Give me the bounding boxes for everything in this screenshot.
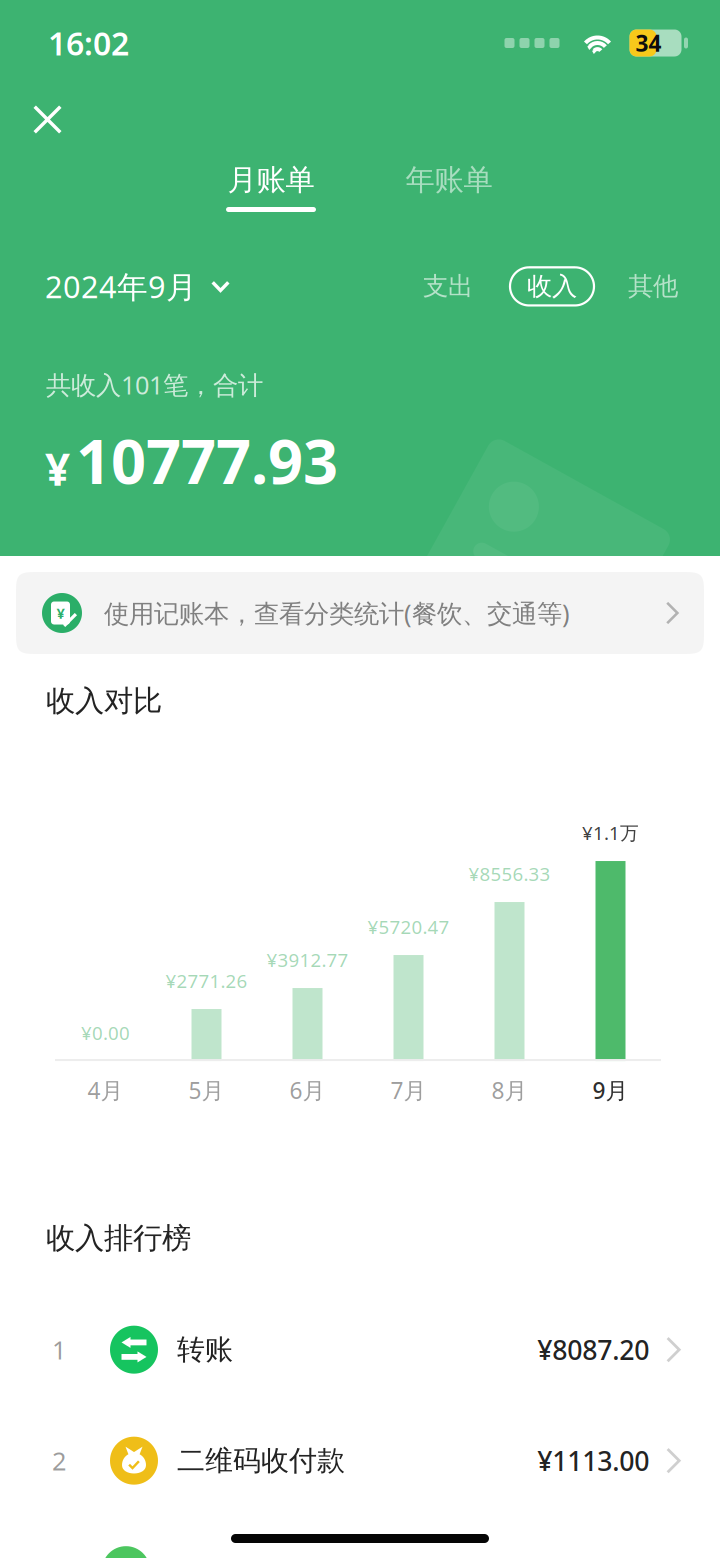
staticText: 4月 [87,1075,123,1105]
staticText: 5月 [188,1075,224,1105]
staticText: 年账单 [405,162,492,198]
button[interactable]: 支出 [419,260,477,313]
staticText: ¥8087.20 [537,1332,649,1367]
button[interactable]: 收入 [510,267,594,305]
staticText: 8月 [491,1075,527,1105]
staticText: 使用记账本，查看分类统计(餐饮、交通等) [104,596,570,630]
staticText: 收入排行榜 [46,1220,191,1256]
staticText: 6月 [289,1075,325,1105]
staticText: ¥ [45,439,70,498]
staticText: 共收入101笔，合计 [46,368,263,401]
staticText: ¥8556.33 [468,861,550,886]
staticText: ¥3912.77 [266,947,348,972]
button[interactable]: Close [0,86,90,146]
staticText: 1 [52,1333,66,1366]
staticText: ¥5720.47 [367,914,449,939]
button[interactable]: 1 [0,1294,720,1405]
staticText: ¥2771.26 [165,968,247,993]
button[interactable]: 其他 [624,260,682,313]
staticText: ¥1113.00 [537,1443,649,1478]
staticText: ¥1.1万 [582,820,639,845]
button[interactable]: 年账单 [404,162,494,212]
staticText: 支出 [423,271,473,302]
staticText: 10777.93 [76,419,338,501]
staticText: 2024年9月 [45,266,197,307]
button[interactable]: ¥ [0,572,720,654]
staticText: 16:02 [48,22,129,64]
button[interactable]: 2024年9月 [45,256,230,317]
staticText: 二维码收付款 [177,1443,345,1478]
button[interactable]: 月账单 [226,162,316,212]
staticText: 9月 [592,1075,628,1105]
staticText: ¥0.00 [81,1020,130,1045]
staticText: 7月 [390,1075,426,1105]
staticText: 收入 [527,271,577,302]
staticText: 月账单 [227,162,314,198]
staticText: 34 [635,28,661,58]
staticText: ¥ [56,603,64,623]
staticText: 2 [52,1444,66,1477]
staticText: 转账 [177,1332,233,1367]
button[interactable]: 2 [0,1405,720,1516]
staticText: 其他 [628,271,678,302]
staticText: 收入对比 [46,683,162,719]
